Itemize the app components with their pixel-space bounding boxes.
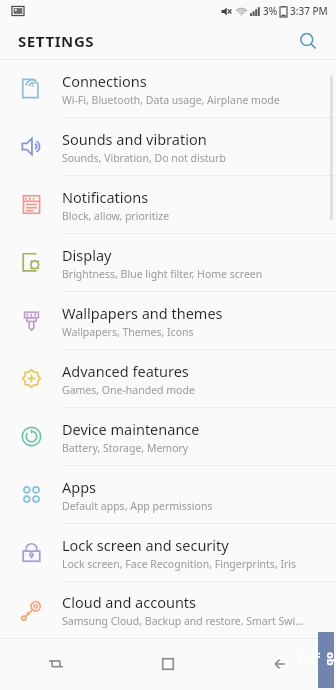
staticText: 3:37 PM xyxy=(290,4,328,18)
staticText: Device maintenance xyxy=(62,419,200,439)
button[interactable]: Cloud and accounts xyxy=(0,582,336,638)
staticText: Battery, Storage, Memory xyxy=(62,441,189,455)
button[interactable]: Device maintenance xyxy=(0,408,336,466)
staticText: SETTINGS xyxy=(18,31,95,51)
button[interactable]: Connections xyxy=(0,60,336,118)
staticText: Connections xyxy=(62,71,147,91)
button[interactable]: Display xyxy=(0,234,336,292)
staticText: Wallpapers and themes xyxy=(62,303,223,323)
button[interactable]: Sounds and vibration xyxy=(0,118,336,176)
staticText: 3% xyxy=(263,4,278,18)
staticText: Advanced features xyxy=(62,361,189,381)
staticText: Lock screen and security xyxy=(62,535,229,555)
staticText: Notifications xyxy=(62,187,149,207)
button[interactable]: Recents xyxy=(0,638,112,690)
staticText: Sounds, Vibration, Do not disturb xyxy=(62,151,226,165)
button[interactable]: Advanced features xyxy=(0,350,336,408)
staticText: Block, allow, prioritize xyxy=(62,209,170,223)
button[interactable]: Back xyxy=(224,638,336,690)
staticText: Default apps, App permissions xyxy=(62,499,213,513)
staticText: Apps xyxy=(62,477,97,497)
staticText: Games, One-handed mode xyxy=(62,383,195,397)
staticText: Wi-Fi, Bluetooth, Data usage, Airplane m… xyxy=(62,93,280,107)
button[interactable]: Search xyxy=(290,23,326,59)
staticText: Samsung Cloud, Backup and restore, Smart… xyxy=(62,614,304,628)
staticText: Sounds and vibration xyxy=(62,129,207,149)
staticText: Display xyxy=(62,245,112,265)
button[interactable]: Notifications xyxy=(0,176,336,234)
staticText: Cloud and accounts xyxy=(62,592,197,612)
staticText: Lock screen, Face Recognition, Fingerpri… xyxy=(62,557,297,571)
button[interactable]: Apps xyxy=(0,466,336,524)
button[interactable]: Wallpapers and themes xyxy=(0,292,336,350)
staticText: mobile.ir xyxy=(298,652,336,668)
button[interactable]: Home xyxy=(112,638,224,690)
staticText: Wallpapers, Themes, Icons xyxy=(62,325,194,339)
button[interactable]: Lock screen and security xyxy=(0,524,336,582)
staticText: Brightness, Blue light filter, Home scre… xyxy=(62,267,263,281)
